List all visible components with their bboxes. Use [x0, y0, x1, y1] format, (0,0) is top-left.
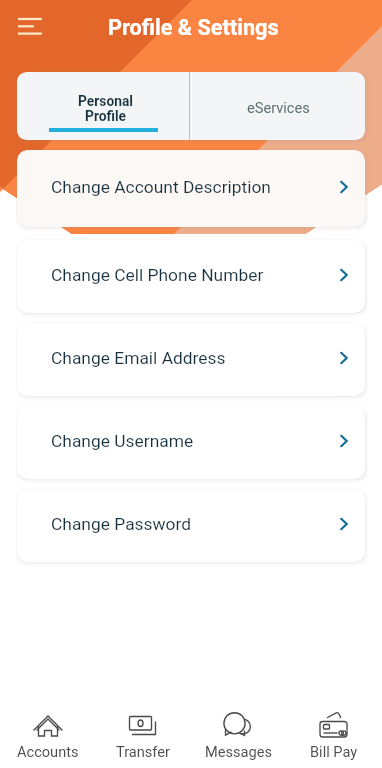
button[interactable]: eServices — [192, 72, 365, 140]
button[interactable]: Messages — [190, 690, 286, 768]
staticText: Messages — [205, 743, 272, 760]
staticText: eServices — [247, 99, 310, 116]
button[interactable]: Change Cell Phone Number — [17, 240, 365, 313]
staticText: Change Password — [51, 514, 192, 534]
staticText: Personal Profile — [78, 93, 133, 125]
button[interactable]: Bill Pay — [286, 690, 382, 768]
staticText: Change Username — [51, 431, 194, 451]
staticText: Bill Pay — [310, 743, 358, 760]
staticText: Profile & Settings — [108, 15, 279, 40]
button[interactable]: Change Account Description — [17, 150, 365, 227]
button[interactable]: Change Password — [17, 489, 365, 562]
staticText: Change Account Description — [51, 177, 271, 197]
button[interactable]: Accounts — [0, 690, 95, 768]
staticText: Transfer — [116, 743, 170, 760]
button[interactable]: Change Username — [17, 406, 365, 479]
staticText: Change Email Address — [51, 348, 226, 368]
button[interactable]: Change Email Address — [17, 323, 365, 396]
staticText: Accounts — [17, 743, 79, 760]
staticText: Change Cell Phone Number — [51, 265, 264, 285]
button[interactable]: Personal Profile — [17, 72, 189, 140]
button[interactable]: Open navigation menu — [10, 8, 50, 48]
button[interactable]: Transfer — [95, 690, 190, 768]
